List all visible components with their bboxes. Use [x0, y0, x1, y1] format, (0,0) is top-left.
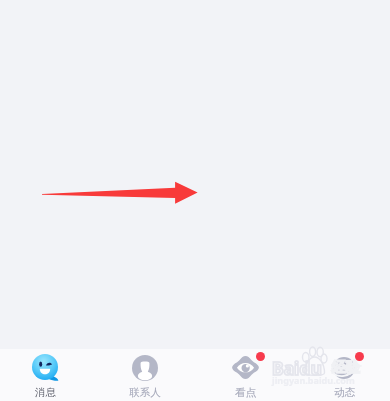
button[interactable]: 看点 [209, 349, 281, 401]
staticText: 看点 [235, 386, 256, 399]
button[interactable]: 联系人 [109, 349, 181, 401]
button[interactable]: 动态 [308, 349, 380, 401]
staticText: 联系人 [129, 386, 161, 399]
staticText: 消息 [35, 386, 56, 399]
staticText: jingyan.baidu.com [272, 374, 355, 386]
staticText: 动态 [334, 386, 355, 399]
button[interactable]: 消息 [9, 349, 81, 401]
staticText: Baidu [272, 356, 322, 380]
staticText: 经验 [332, 359, 360, 377]
